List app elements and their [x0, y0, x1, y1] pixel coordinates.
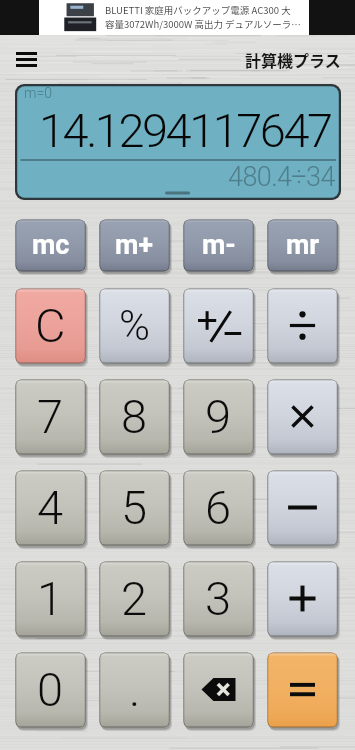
staticText: 3: [205, 571, 232, 626]
button[interactable]: 2: [99, 561, 172, 639]
button[interactable]: m+: [99, 219, 172, 274]
button[interactable]: 5: [99, 470, 172, 548]
button[interactable]: Multiply: [267, 379, 340, 457]
staticText: 6: [205, 480, 232, 535]
staticText: mr: [286, 229, 320, 261]
button[interactable]: 6: [183, 470, 256, 548]
button[interactable]: 0: [15, 652, 88, 730]
staticText: 8: [121, 389, 148, 444]
button[interactable]: mc: [15, 219, 88, 274]
staticText: %: [119, 301, 151, 350]
staticText: 7: [37, 389, 64, 444]
staticText: C: [35, 298, 66, 353]
button[interactable]: m-: [183, 219, 256, 274]
button[interactable]: Backspace: [183, 652, 256, 730]
staticText: 14.1294117647: [39, 103, 331, 153]
staticText: .: [129, 662, 141, 717]
button[interactable]: C: [15, 288, 88, 366]
staticText: 4: [37, 480, 64, 535]
button[interactable]: 7: [15, 379, 88, 457]
button[interactable]: 1: [15, 561, 88, 639]
staticText: m+: [115, 229, 154, 261]
button[interactable]: 3: [183, 561, 256, 639]
button[interactable]: Equals: [267, 652, 340, 730]
staticText: m-: [202, 229, 236, 261]
staticText: 計算機プラス: [245, 48, 341, 71]
button[interactable]: %: [99, 288, 172, 366]
staticText: 5: [121, 480, 148, 535]
staticText: 2: [121, 571, 148, 626]
staticText: mc: [32, 229, 70, 261]
staticText: 480.4÷34: [228, 161, 335, 191]
button[interactable]: 4: [15, 470, 88, 548]
button[interactable]: Divide: [267, 288, 340, 366]
staticText: m=0: [24, 85, 52, 101]
button[interactable]: Open menu: [4, 35, 48, 83]
staticText: 1: [37, 571, 64, 626]
button[interactable]: 9: [183, 379, 256, 457]
button[interactable]: mr: [267, 219, 340, 274]
staticText: BLUETTI 家庭用バックアップ電源 AC300 大: [105, 3, 291, 17]
button[interactable]: Plus: [267, 561, 340, 639]
button[interactable]: Minus: [267, 470, 340, 548]
staticText: 容量3072Wh/3000W 高出力 デュアルソーラ…: [105, 17, 301, 31]
staticText: 0: [37, 662, 64, 717]
staticText: 9: [205, 389, 232, 444]
button[interactable]: 8: [99, 379, 172, 457]
button[interactable]: Plus minus: [183, 288, 256, 366]
button[interactable]: .: [99, 652, 172, 730]
